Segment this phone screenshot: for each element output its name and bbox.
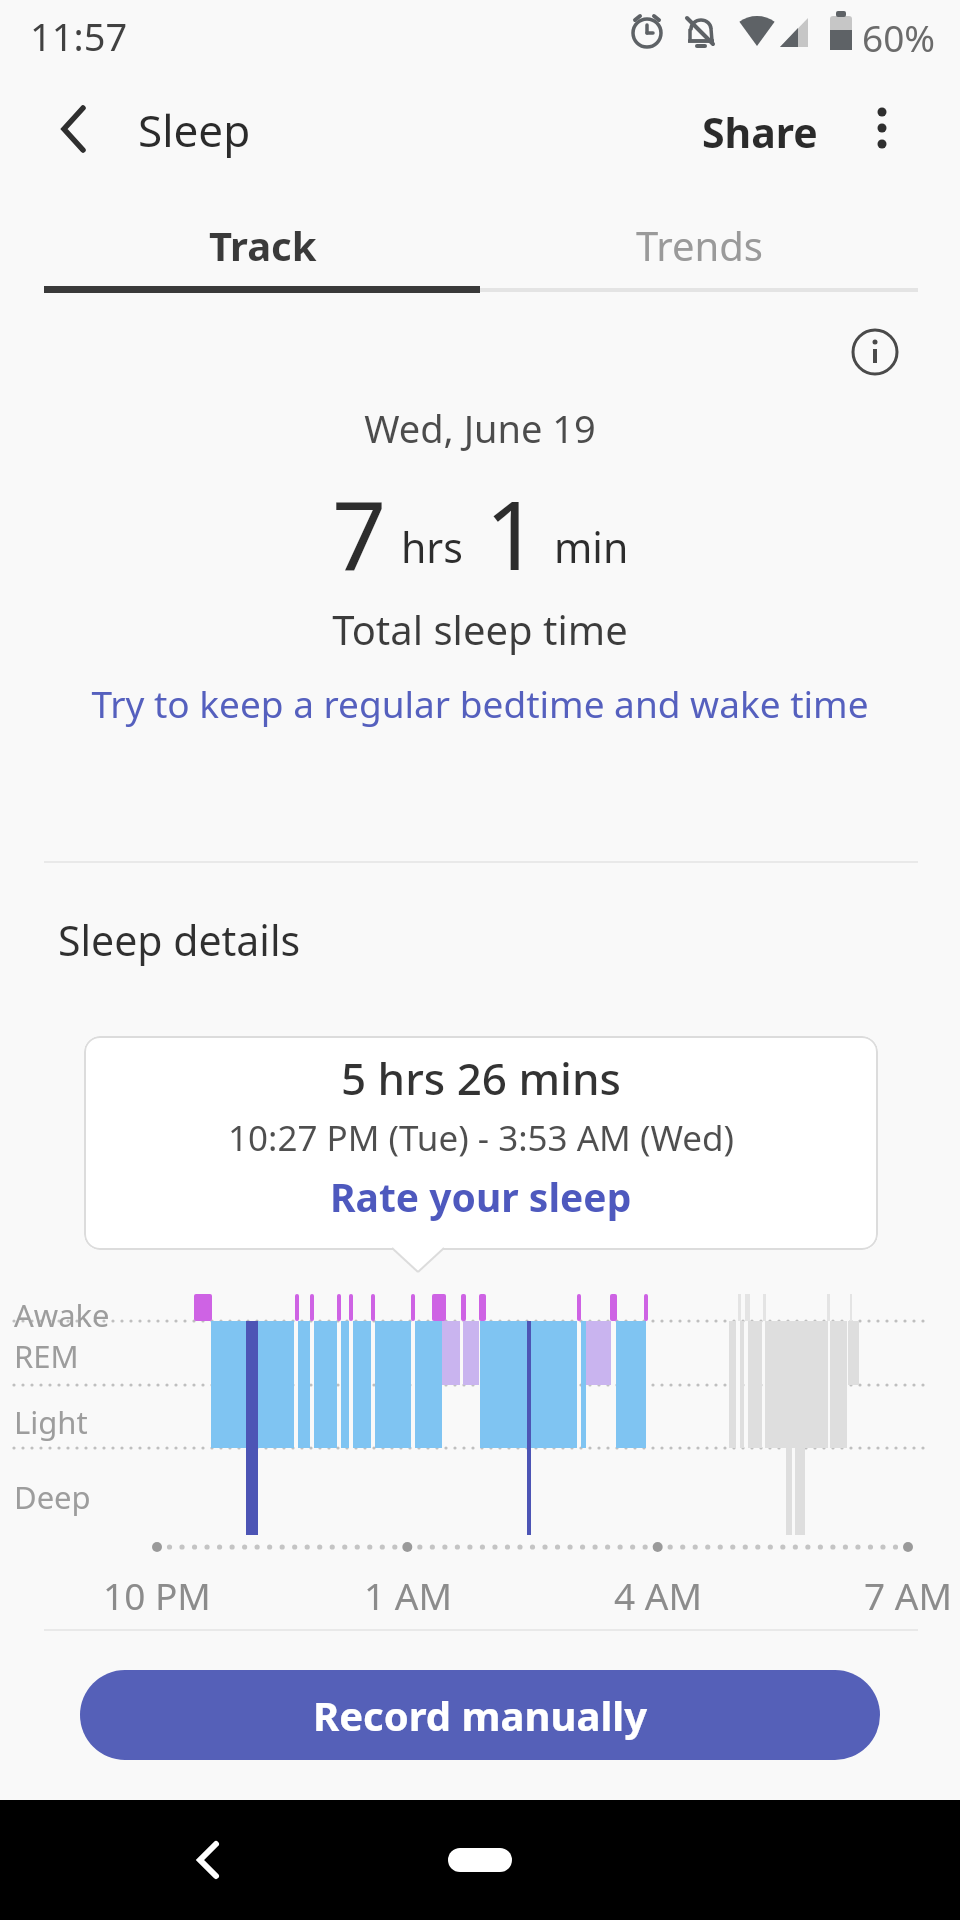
button[interactable]: Try to keep a regular bedtime and wake t… [0,678,960,728]
staticText: min [554,519,629,575]
staticText: Record manually [313,1688,648,1742]
button[interactable] [178,1830,238,1890]
staticText: Share [702,104,818,160]
button[interactable]: Track [44,205,481,285]
button[interactable] [448,1848,512,1872]
button[interactable] [850,96,914,160]
staticText: 10 PM [103,1570,211,1620]
button[interactable] [846,323,904,381]
button[interactable] [40,98,104,162]
staticText: Light [14,1401,88,1443]
staticText: Trends [636,218,763,272]
button[interactable]: Share [702,104,818,160]
staticText: Deep [14,1476,91,1518]
staticText: 4 AM [614,1570,702,1620]
staticText: Rate your sleep [330,1170,632,1223]
staticText: 10:27 PM (Tue) - 3:53 AM (Wed) [228,1114,734,1162]
staticText: 1 [485,468,540,597]
staticText: Sleep details [58,912,301,968]
staticText: Try to keep a regular bedtime and wake t… [0,678,960,728]
staticText: 7 [332,468,387,597]
button[interactable]: Record manually [80,1670,880,1760]
staticText: 11:57 [30,10,128,62]
staticText: hrs [401,519,463,575]
staticText: 60% [862,12,936,62]
staticText: Wed, June 19 [0,402,960,454]
staticText: Track [209,218,317,272]
staticText: Total sleep time [0,602,960,656]
button[interactable]: Trends [481,205,918,285]
staticText: Awake [14,1294,110,1336]
button[interactable]: Rate your sleep [330,1170,632,1223]
staticText: 1 AM [364,1570,452,1620]
staticText: 7 AM [864,1570,952,1620]
staticText: Sleep [138,100,251,160]
staticText: 5 hrs 26 mins [341,1048,621,1108]
staticText: REM [14,1335,79,1377]
